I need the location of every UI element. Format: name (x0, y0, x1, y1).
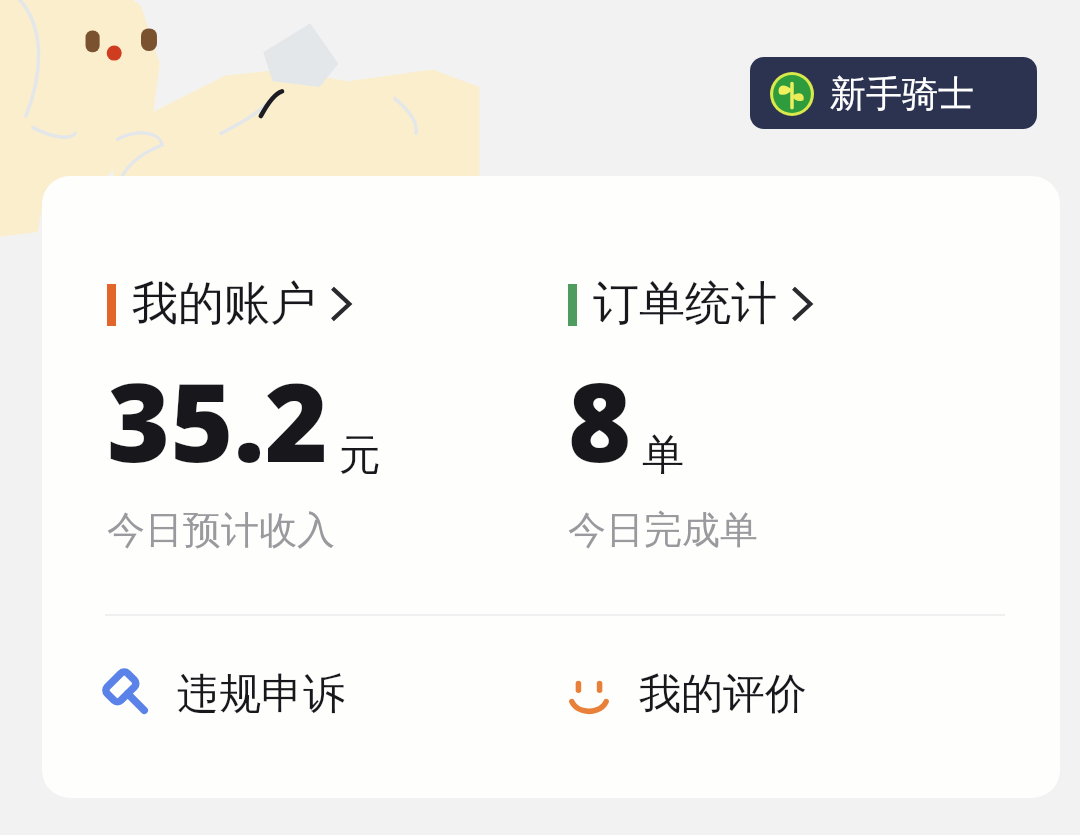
button[interactable]: 新手骑士 (750, 57, 1037, 129)
button[interactable]: 订单统计 (555, 275, 955, 554)
staticText: 今日完成单 (568, 506, 758, 554)
staticText: 我的评价 (639, 668, 807, 721)
staticText: 新手骑士 (830, 71, 974, 116)
staticText: 今日预计收入 (107, 506, 335, 554)
staticText: 8 (568, 347, 632, 494)
other: 违规申诉 (105, 671, 153, 719)
button[interactable]: 我的评价 (555, 668, 995, 721)
staticText: 违规申诉 (177, 668, 345, 721)
staticText: 单 (642, 429, 684, 482)
other: 我的评价 (565, 671, 613, 719)
button[interactable]: 违规申诉 (42, 668, 555, 721)
staticText: 元 (339, 429, 381, 482)
staticText: 35.2 (107, 347, 329, 494)
staticText: 我的账户 (132, 275, 316, 333)
staticText: 订单统计 (593, 275, 777, 333)
button[interactable]: 我的账户 (42, 275, 555, 554)
